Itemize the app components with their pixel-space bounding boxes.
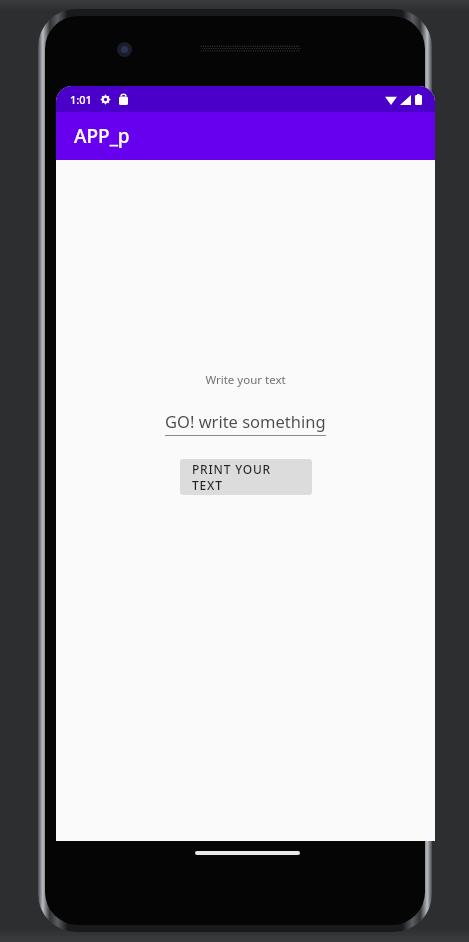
staticText: APP_p [74,123,130,149]
staticText: PRINT YOUR TEXT [192,461,300,493]
button[interactable]: PRINT YOUR TEXT [180,459,312,495]
button[interactable]: GO! write something [165,410,326,436]
staticText: Write your text [205,372,286,388]
staticText: 1:01 [70,92,92,107]
staticText: GO! write something [165,410,326,432]
